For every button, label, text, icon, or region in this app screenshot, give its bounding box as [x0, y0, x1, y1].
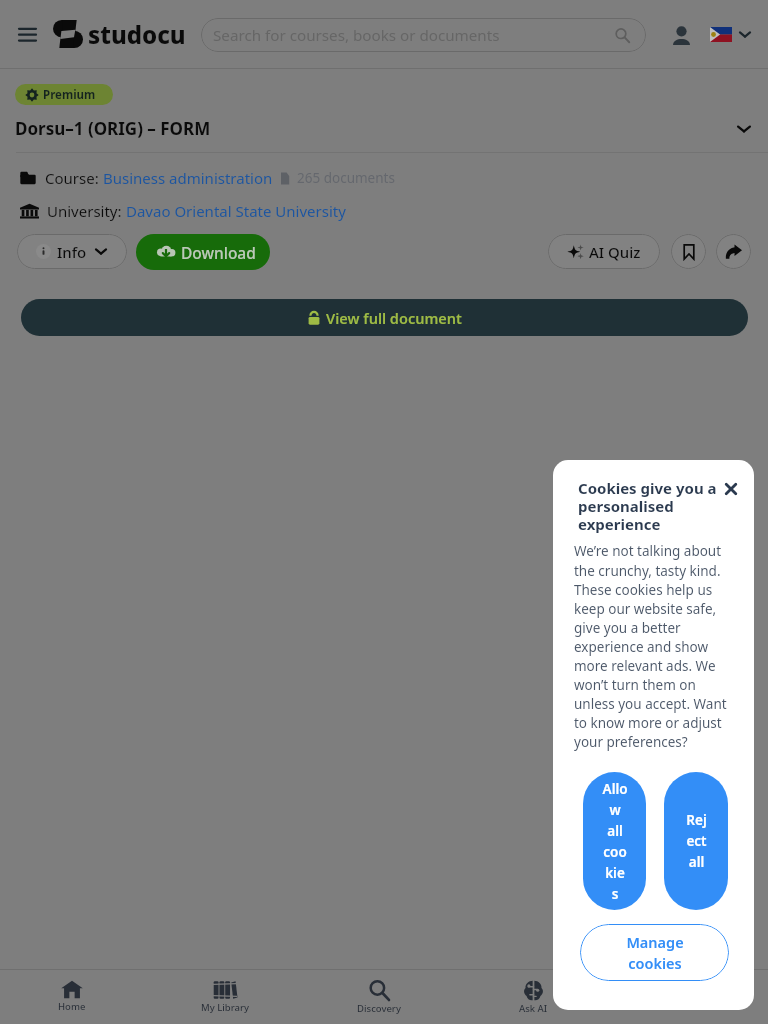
staticText: Reject all [683, 811, 710, 871]
staticText: My Library [201, 1001, 250, 1014]
button[interactable]: Premium [15, 84, 113, 105]
staticText: AI Quiz [589, 242, 641, 262]
button[interactable]: Business administration [103, 168, 273, 188]
button[interactable]: Search for courses, books or documents [201, 18, 646, 52]
button[interactable]: studocu [53, 15, 186, 53]
button[interactable]: Discovery [331, 970, 427, 1024]
staticText: Allow all cookies [602, 780, 628, 903]
staticText: Home [58, 1000, 86, 1013]
button[interactable]: Save to bookmarks [671, 234, 706, 269]
staticText: We’re not talking about the crunchy, tas… [574, 542, 732, 751]
button[interactable]: Expand details [728, 113, 760, 145]
button[interactable]: Language [703, 18, 751, 50]
button[interactable]: View full document [21, 299, 748, 336]
button[interactable]: Menu [9, 16, 46, 53]
staticText: Cookies give you a personalised experien… [578, 478, 721, 535]
button[interactable]: Davao Oriental State University [126, 201, 346, 221]
staticText: 265 documents [297, 169, 395, 187]
button[interactable]: Manage cookies [580, 924, 729, 981]
button[interactable]: Allow all cookies [583, 772, 646, 910]
button[interactable]: Home [24, 970, 120, 1024]
staticText: Premium [43, 87, 96, 103]
button[interactable]: AI Quiz [548, 234, 660, 269]
staticText: Download [181, 242, 256, 263]
staticText: Ask AI [519, 1002, 548, 1015]
staticText: Info [57, 242, 87, 262]
staticText: Dorsu–1 (ORIG) – FORM [15, 117, 211, 140]
staticText: Course: [45, 168, 103, 188]
staticText: studocu [88, 18, 186, 51]
button[interactable]: Ask AI [485, 970, 581, 1024]
staticText: Search for courses, books or documents [213, 25, 500, 46]
button[interactable]: Account [664, 18, 699, 53]
button[interactable]: Reject all [664, 772, 728, 910]
button[interactable]: Info [17, 234, 127, 269]
button[interactable]: Share [716, 234, 751, 269]
staticText: University: [47, 201, 126, 221]
button[interactable]: My Library [177, 970, 273, 1024]
staticText: View full document [326, 308, 462, 328]
button[interactable]: Close [719, 477, 743, 501]
staticText: Manage cookies [615, 932, 695, 974]
button[interactable]: Download [136, 234, 270, 270]
staticText: Discovery [357, 1002, 401, 1015]
